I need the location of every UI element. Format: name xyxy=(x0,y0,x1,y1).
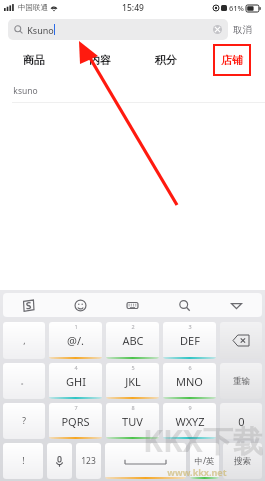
button[interactable]: kb xyxy=(106,293,158,317)
button[interactable]: 4 xyxy=(49,363,102,399)
staticText: JKL xyxy=(125,374,141,389)
button[interactable]: 。 xyxy=(3,363,45,399)
button[interactable]: 1 xyxy=(49,322,102,359)
button[interactable]: 0 xyxy=(220,403,262,439)
button[interactable]: 内容 xyxy=(67,44,133,76)
staticText: 商品 xyxy=(23,53,45,67)
button[interactable]: emoji xyxy=(54,293,106,317)
staticText: ? xyxy=(22,415,26,427)
staticText: 店铺 xyxy=(221,53,243,67)
staticText: 重输 xyxy=(233,376,250,387)
staticText: 1 xyxy=(74,323,78,330)
staticText: 6 xyxy=(188,364,192,371)
button[interactable]: 3 xyxy=(163,322,216,359)
staticText: 积分 xyxy=(155,53,177,67)
button[interactable]: down xyxy=(210,293,262,317)
button[interactable]: 取消 xyxy=(228,21,257,39)
staticText: MNO xyxy=(176,374,203,389)
button[interactable]: 123 xyxy=(76,443,101,479)
button[interactable]: ! xyxy=(3,443,43,479)
button[interactable]: , xyxy=(3,322,45,359)
button[interactable]: ? xyxy=(3,403,45,439)
button[interactable]: 店铺 xyxy=(199,44,265,76)
button[interactable]: Ksuno xyxy=(8,19,228,40)
button[interactable]: 重输 xyxy=(220,363,262,399)
staticText: 内容 xyxy=(89,53,111,67)
staticText: @/. xyxy=(67,333,84,348)
button[interactable]: 2 xyxy=(106,322,159,359)
button[interactable]: Space xyxy=(105,443,186,479)
button[interactable]: Clear xyxy=(213,25,222,34)
other: Delete xyxy=(233,335,249,346)
staticText: GHI xyxy=(66,374,86,389)
staticText: , xyxy=(23,335,26,347)
button[interactable]: 积分 xyxy=(133,44,199,76)
staticText: KKX下载 xyxy=(143,420,263,461)
button[interactable]: search xyxy=(158,293,210,317)
button[interactable]: Delete xyxy=(220,322,262,359)
staticText: 3 xyxy=(188,323,192,330)
other: Space xyxy=(125,458,166,464)
staticText: 中国联通 xyxy=(18,3,48,12)
button[interactable]: 搜索 xyxy=(223,443,262,479)
staticText: PQRS xyxy=(61,414,90,429)
staticText: 9 xyxy=(188,404,192,411)
staticText: WXYZ xyxy=(175,414,205,429)
staticText: ! xyxy=(22,455,25,467)
staticText: 15:49 xyxy=(122,2,144,14)
staticText: www.kkx.net xyxy=(167,466,227,478)
button[interactable]: Voice input xyxy=(47,443,72,479)
button[interactable]: 7 xyxy=(49,403,102,439)
staticText: 123 xyxy=(81,455,96,467)
staticText: 0 xyxy=(238,414,245,429)
button[interactable]: 6 xyxy=(163,363,216,399)
staticText: ksuno xyxy=(13,85,38,97)
button[interactable]: 8 xyxy=(106,403,159,439)
staticText: 7 xyxy=(74,404,78,411)
staticText: Ksuno xyxy=(27,24,54,36)
staticText: 。 xyxy=(20,376,29,387)
other: Voice input xyxy=(55,455,64,468)
staticText: ABC xyxy=(122,333,144,348)
staticText: 5 xyxy=(131,364,135,371)
staticText: 搜索 xyxy=(234,456,251,467)
staticText: DEF xyxy=(180,333,200,348)
button[interactable]: S xyxy=(3,293,54,317)
button[interactable]: 中/英 xyxy=(190,443,219,479)
staticText: 取消 xyxy=(233,24,252,36)
staticText: TUV xyxy=(122,414,143,429)
button[interactable]: 9 xyxy=(163,403,216,439)
staticText: 2 xyxy=(131,323,135,330)
staticText: 中/英 xyxy=(194,455,215,467)
staticText: 4 xyxy=(74,364,78,371)
staticText: 8 xyxy=(131,404,135,411)
button[interactable]: 商品 xyxy=(0,44,67,76)
staticText: 61% xyxy=(229,3,244,13)
button[interactable]: 5 xyxy=(106,363,159,399)
